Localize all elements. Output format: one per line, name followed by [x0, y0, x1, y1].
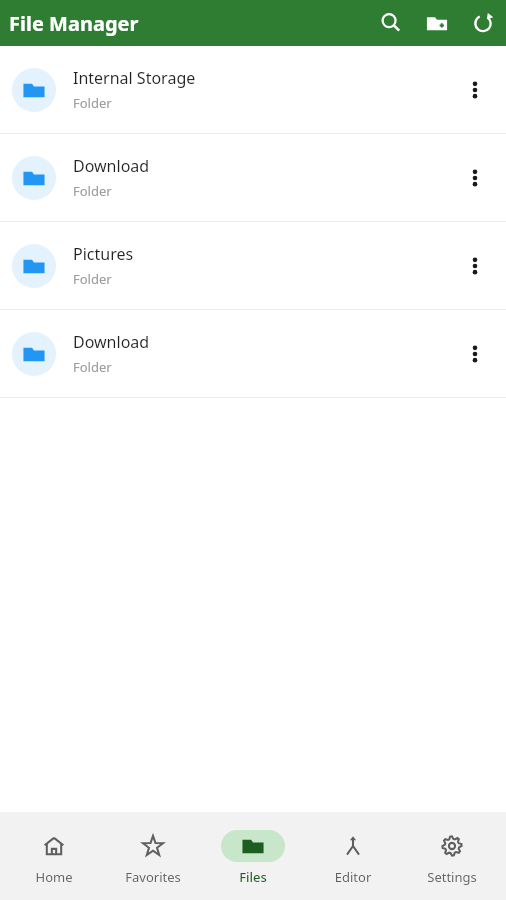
button[interactable]: Files [207, 826, 299, 886]
button[interactable]: Internal Storage [0, 46, 506, 133]
staticText: Folder [73, 358, 112, 376]
button[interactable]: More options [453, 156, 497, 200]
button[interactable]: More options [453, 332, 497, 376]
staticText: Folder [73, 182, 112, 200]
button[interactable]: Search [374, 6, 408, 40]
staticText: Favorites [107, 868, 199, 886]
button[interactable]: Home [8, 826, 100, 886]
button[interactable]: New folder [420, 6, 454, 40]
button[interactable]: Refresh [466, 6, 500, 40]
button[interactable]: Download [0, 134, 506, 221]
button[interactable]: Settings [406, 826, 498, 886]
staticText: Download [73, 331, 150, 353]
staticText: Folder [73, 270, 112, 288]
staticText: Pictures [73, 243, 134, 265]
staticText: Files [207, 868, 299, 886]
button[interactable]: More options [453, 244, 497, 288]
button[interactable]: More options [453, 68, 497, 112]
button[interactable]: Pictures [0, 222, 506, 309]
button[interactable]: Download [0, 310, 506, 397]
staticText: Folder [73, 94, 112, 112]
staticText: Internal Storage [73, 67, 196, 89]
staticText: Settings [406, 868, 498, 886]
staticText: Editor [307, 868, 399, 886]
button[interactable]: Editor [307, 826, 399, 886]
staticText: File Manager [9, 10, 139, 37]
staticText: Home [8, 868, 100, 886]
button[interactable]: Favorites [107, 826, 199, 886]
staticText: Download [73, 155, 150, 177]
